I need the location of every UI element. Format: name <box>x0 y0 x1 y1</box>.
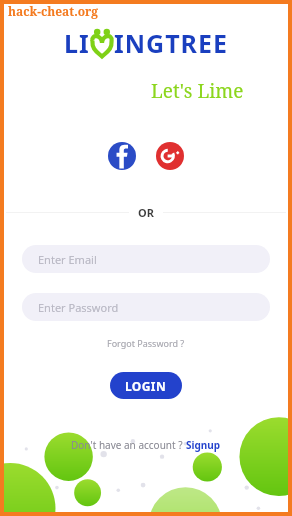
staticText: Let's Lime <box>151 78 244 104</box>
button[interactable]: Don't have an account ? <box>67 436 225 454</box>
staticText: OR <box>138 205 154 220</box>
staticText: LI <box>64 26 90 60</box>
staticText: hack-cheat.org <box>8 3 99 19</box>
staticText: Enter Email <box>38 252 97 267</box>
staticText: Signup <box>186 438 221 452</box>
button[interactable]: LOGIN <box>110 372 182 399</box>
staticText: Don't have an account ? <box>71 438 186 452</box>
staticText: Enter Password <box>38 300 119 315</box>
button[interactable]: Enter Password <box>22 293 270 321</box>
button[interactable]: Sign in with Google <box>156 142 184 170</box>
staticText: LOGIN <box>125 378 167 394</box>
staticText: INGTREE <box>114 26 228 60</box>
button[interactable]: Forgot Password ? <box>101 335 191 351</box>
button[interactable]: Sign in with Facebook <box>108 142 136 170</box>
staticText: Forgot Password ? <box>107 337 185 349</box>
button[interactable]: Enter Email <box>22 245 270 273</box>
